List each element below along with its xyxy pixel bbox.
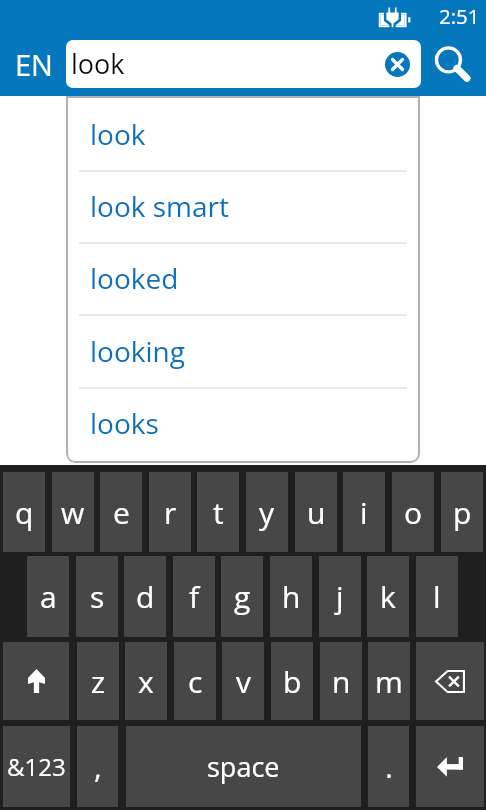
button[interactable]: g (221, 556, 263, 637)
button[interactable]: space (126, 726, 361, 807)
staticText: c (188, 661, 203, 702)
button[interactable]: EN (6, 40, 62, 88)
button[interactable]: look (66, 100, 420, 172)
staticText: looks (90, 404, 159, 442)
staticText: k (380, 576, 396, 617)
button[interactable]: Backspace (416, 642, 484, 720)
button[interactable]: Shift (3, 642, 69, 720)
staticText: z (91, 661, 106, 702)
button[interactable]: b (271, 642, 313, 720)
staticText: b (283, 661, 302, 702)
staticText: l (433, 576, 441, 617)
button[interactable]: looking (66, 317, 420, 389)
button[interactable]: m (368, 642, 410, 720)
staticText: EN (15, 45, 53, 84)
staticText: i (360, 492, 368, 533)
button[interactable]: s (76, 556, 118, 637)
button[interactable]: i (343, 472, 385, 552)
staticText: , (94, 746, 102, 787)
button[interactable]: u (295, 472, 337, 552)
button[interactable]: h (270, 556, 312, 637)
staticText: . (385, 746, 393, 787)
button[interactable]: v (222, 642, 264, 720)
staticText: look smart (90, 187, 229, 225)
staticText: d (136, 576, 155, 617)
staticText: p (453, 492, 472, 533)
staticText: looked (90, 259, 179, 297)
staticText: s (90, 576, 105, 617)
button[interactable]: l (416, 556, 458, 637)
staticText: q (15, 492, 34, 533)
staticText: v (236, 661, 251, 702)
button[interactable]: look (66, 40, 421, 88)
staticText: w (61, 492, 85, 533)
staticText: o (404, 492, 423, 533)
button[interactable]: o (392, 472, 434, 552)
button[interactable]: &123 (3, 726, 70, 807)
button[interactable]: f (173, 556, 215, 637)
button[interactable]: x (125, 642, 167, 720)
button[interactable]: a (27, 556, 69, 637)
button[interactable]: d (124, 556, 166, 637)
button[interactable]: Clear text (385, 52, 410, 77)
staticText: n (332, 661, 351, 702)
staticText: space (207, 748, 280, 785)
button[interactable]: p (441, 472, 483, 552)
button[interactable]: Search (424, 40, 472, 88)
staticText: j (336, 576, 344, 617)
staticText: r (164, 492, 177, 533)
button[interactable]: Enter (416, 726, 484, 807)
staticText: y (259, 492, 275, 533)
button[interactable]: look smart (66, 172, 420, 244)
staticText: u (307, 492, 326, 533)
button[interactable]: j (319, 556, 361, 637)
button[interactable]: e (100, 472, 142, 552)
button[interactable]: t (197, 472, 239, 552)
staticText: t (213, 492, 224, 533)
staticText: &123 (7, 750, 66, 783)
staticText: a (40, 576, 57, 617)
button[interactable]: y (246, 472, 288, 552)
staticText: g (234, 576, 251, 617)
staticText: e (113, 492, 130, 533)
button[interactable]: , (77, 726, 118, 807)
staticText: look (71, 45, 125, 82)
staticText: 2:51 (439, 2, 480, 30)
staticText: f (189, 576, 200, 617)
button[interactable]: k (367, 556, 409, 637)
button[interactable]: looks (66, 389, 420, 461)
staticText: h (282, 576, 301, 617)
button[interactable]: q (3, 472, 45, 552)
button[interactable]: z (77, 642, 119, 720)
button[interactable]: r (149, 472, 191, 552)
staticText: looking (90, 332, 185, 370)
button[interactable]: . (368, 726, 409, 807)
staticText: m (375, 661, 403, 702)
button[interactable]: w (52, 472, 94, 552)
button[interactable]: looked (66, 244, 420, 316)
staticText: look (90, 115, 146, 153)
staticText: x (138, 661, 154, 702)
button[interactable]: c (174, 642, 216, 720)
button[interactable]: n (320, 642, 362, 720)
